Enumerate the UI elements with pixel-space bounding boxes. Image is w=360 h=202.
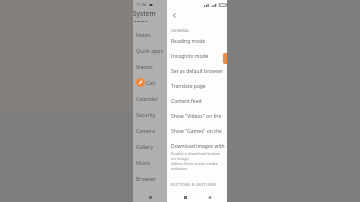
staticText: Calendar: [136, 95, 158, 102]
staticText: Gallery: [136, 143, 154, 150]
button[interactable]: Browser: [133, 170, 167, 186]
button[interactable]: Xiaomi Cloud: [133, 58, 167, 74]
staticText: GENERAL: [171, 28, 190, 34]
staticText: System apps: [133, 9, 167, 22]
staticText: Call settings: [146, 79, 165, 86]
staticText: Show "Videos" on the navigation bar: [171, 113, 225, 120]
button[interactable]: Gallery: [133, 138, 167, 154]
staticText: Security: [136, 111, 156, 118]
button[interactable]: Reading mode: [167, 34, 227, 49]
button[interactable]: Back: [204, 193, 214, 202]
staticText: Download images with video: [171, 143, 225, 150]
button[interactable]: Security: [133, 106, 167, 122]
staticText: Camera: [136, 127, 155, 134]
button[interactable]: Content feed: [167, 94, 227, 109]
button[interactable]: Back: [167, 9, 181, 21]
button[interactable]: Show "Games" on the navigation bar: [167, 124, 227, 139]
button[interactable]: Download images with video: [167, 139, 227, 175]
staticText: Swipe from edge: [171, 192, 211, 198]
staticText: Show "Games" on the navigation bar: [171, 128, 225, 135]
button[interactable]: Recents: [180, 193, 190, 202]
button[interactable]: Calendar: [133, 90, 167, 106]
button[interactable]: Notes: [133, 26, 167, 42]
staticText: Recorder: [136, 191, 159, 198]
staticText: Music: [136, 159, 151, 166]
button[interactable]: Incognito mode: [167, 49, 227, 64]
staticText: Enable a download button on image videos…: [171, 151, 225, 171]
staticText: Set as default browser: [171, 68, 224, 75]
staticText: Translate page: [171, 83, 206, 90]
button[interactable]: Recorder: [133, 186, 167, 202]
staticText: Xiaomi Cloud: [136, 63, 165, 70]
button[interactable]: Call settings: [133, 74, 167, 90]
button[interactable]: Swipe from edge: [167, 188, 227, 202]
staticText: Content feed: [171, 98, 202, 105]
button[interactable]: Translate page: [167, 79, 227, 94]
button[interactable]: Show "Videos" on the navigation bar: [167, 109, 227, 124]
staticText: Reading mode: [171, 38, 206, 45]
staticText: Quick apps Service: [136, 47, 165, 54]
staticText: 11:04: [136, 2, 147, 7]
button[interactable]: Set as default browser: [167, 64, 227, 79]
button[interactable]: Camera: [133, 122, 167, 138]
button[interactable]: Music: [133, 154, 167, 170]
button[interactable]: Recents: [145, 193, 155, 202]
staticText: BUTTONS & GESTURES: [171, 182, 217, 188]
staticText: Incognito mode: [171, 53, 209, 60]
button[interactable]: Quick apps Service: [133, 42, 167, 58]
staticText: Browser: [136, 175, 157, 182]
staticText: Notes: [136, 31, 151, 38]
